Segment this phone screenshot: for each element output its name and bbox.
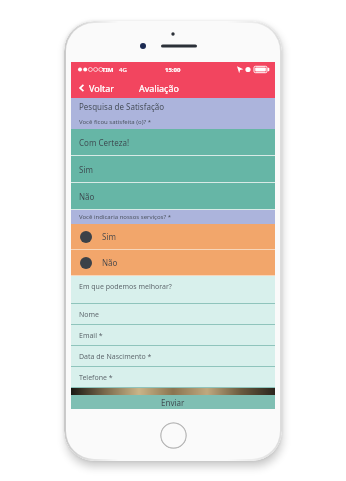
staticText: Sim xyxy=(102,231,116,242)
staticText: Você ficou satisfeita (o)? * xyxy=(79,118,151,126)
staticText: Nome xyxy=(79,310,100,320)
button[interactable]: Sim xyxy=(71,224,275,250)
button[interactable]: Data de Nascimento * xyxy=(71,346,275,367)
staticText: Pesquisa de Satisfação xyxy=(79,101,165,112)
button[interactable]: Com Certeza! xyxy=(71,129,275,156)
staticText: Enviar xyxy=(161,397,185,408)
button[interactable]: Nome xyxy=(71,304,275,325)
button[interactable]: Enviar xyxy=(71,395,275,409)
staticText: Sim xyxy=(79,164,93,175)
staticText: Não xyxy=(79,191,95,202)
button[interactable]: Não xyxy=(71,183,275,210)
staticText: Com Certeza! xyxy=(79,137,130,148)
button[interactable]: Em que podemos melhorar? xyxy=(71,276,275,304)
button[interactable]: Sim xyxy=(71,156,275,183)
staticText: Avaliação xyxy=(139,82,179,94)
staticText: Email * xyxy=(79,331,103,341)
button[interactable]: Home xyxy=(160,422,187,449)
button[interactable]: Voltar xyxy=(76,80,117,96)
staticText: Em que podemos melhorar? xyxy=(79,282,172,292)
staticText: Voltar xyxy=(89,82,115,94)
button[interactable]: Email * xyxy=(71,325,275,346)
staticText: Não xyxy=(102,257,118,268)
staticText: TIM xyxy=(102,66,114,74)
button[interactable]: Não xyxy=(71,250,275,276)
staticText: 15:00 xyxy=(165,66,181,74)
staticText: Data de Nascimento * xyxy=(79,352,152,362)
staticText: 4G xyxy=(119,66,127,74)
staticText: Você indicaria nossos serviços? * xyxy=(79,213,171,221)
staticText: Telefone * xyxy=(79,373,113,383)
button[interactable]: Telefone * xyxy=(71,367,275,388)
